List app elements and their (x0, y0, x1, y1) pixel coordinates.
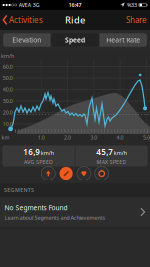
staticText: km/h (1, 52, 14, 60)
staticText: Learn about Segments and Achievements (4, 214, 105, 221)
staticText: Elevation (12, 36, 41, 44)
staticText: Heart Rate (106, 36, 140, 44)
button[interactable]: Speed (51, 33, 99, 47)
staticText: 5.0 (143, 134, 150, 141)
staticText: AVG SPEED (24, 158, 53, 165)
staticText: Share (126, 15, 147, 25)
staticText: 1.0 (38, 134, 45, 141)
staticText: 16:47 (68, 1, 81, 9)
button[interactable]: Elevation (3, 33, 51, 47)
staticText: Ride (65, 14, 85, 26)
staticText: km (1, 134, 9, 141)
staticText: 40.0 (3, 86, 13, 93)
button[interactable]: Share (126, 15, 150, 25)
staticText: 60.0 (3, 63, 13, 70)
staticText: km/h (41, 149, 54, 157)
button[interactable]: Elevation (41, 166, 55, 180)
staticText: 30.0 (3, 97, 13, 105)
button[interactable]: Heart Rate (77, 166, 91, 180)
button[interactable]: No Segments Found (0, 197, 150, 228)
staticText: km/h (114, 149, 127, 157)
staticText: 45,7 (96, 147, 113, 157)
staticText: AVEA (19, 1, 31, 9)
staticText: 50.0 (3, 74, 13, 82)
staticText: MAX SPEED (96, 158, 126, 165)
staticText: %33 (127, 1, 137, 9)
staticText: 2.0 (64, 134, 71, 141)
staticText: 20.0 (3, 109, 13, 116)
staticText: Speed (65, 36, 85, 44)
button[interactable]: Speed (59, 166, 73, 180)
button[interactable]: Heart Rate (99, 33, 147, 47)
staticText: 3G (33, 1, 40, 9)
staticText: 3.0 (90, 134, 97, 141)
staticText: Activities (9, 15, 43, 25)
staticText: 4.0 (117, 134, 124, 141)
staticText: SEGMENTS (4, 186, 34, 193)
staticText: No Segments Found (4, 203, 67, 212)
staticText: 16,9 (23, 147, 40, 157)
button[interactable]: Back to Activities (0, 15, 43, 25)
button[interactable]: Power (95, 166, 109, 180)
staticText: 10.0 (3, 120, 13, 127)
